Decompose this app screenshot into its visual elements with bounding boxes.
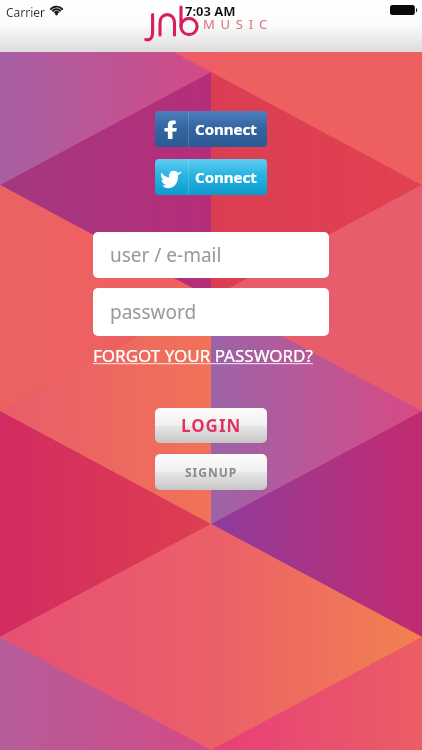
button[interactable]: SIGNUP	[155, 454, 267, 490]
staticText: Carrier	[6, 4, 46, 20]
staticText: LOGIN	[181, 414, 242, 437]
staticText: Connect	[195, 167, 257, 187]
button[interactable]: FORGOT YOUR PASSWORD?	[93, 344, 313, 366]
button[interactable]: password	[93, 288, 329, 336]
staticText: FORGOT YOUR PASSWORD?	[93, 344, 313, 366]
staticText: M U S I C	[203, 15, 269, 33]
button[interactable]: user / e-mail	[93, 232, 329, 278]
button[interactable]: LOGIN	[155, 408, 267, 443]
staticText: Connect	[195, 119, 257, 139]
staticText: SIGNUP	[185, 464, 238, 480]
staticText: 7:03 AM	[185, 2, 236, 20]
button[interactable]: Connect	[155, 159, 267, 195]
staticText: password	[110, 299, 197, 325]
staticText: user / e-mail	[110, 242, 222, 268]
button[interactable]: Connect	[155, 111, 267, 147]
